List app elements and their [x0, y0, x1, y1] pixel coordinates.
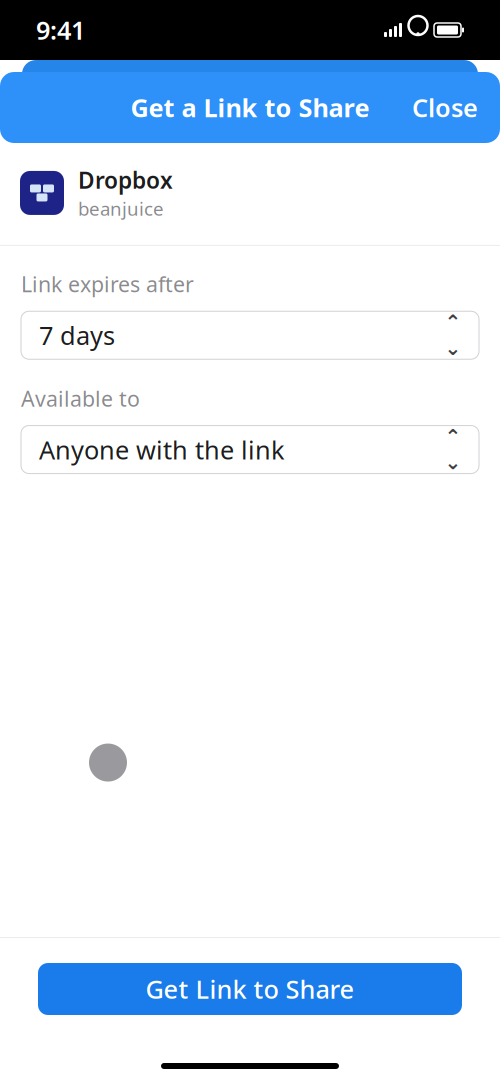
staticText: beanjuice — [78, 196, 164, 221]
staticText: Link expires after — [21, 270, 194, 298]
staticText: Get a Link to Share — [130, 91, 369, 124]
staticText: ⌃ — [444, 425, 461, 448]
staticText: ⌄ — [444, 451, 461, 474]
button[interactable]: Close — [402, 83, 488, 132]
staticText: 9:41 — [36, 13, 85, 47]
staticText: 7 days — [39, 318, 115, 352]
staticText: Get Link to Share — [145, 972, 354, 1006]
button[interactable]: Anyone with the link — [21, 426, 479, 474]
staticText: Dropbox — [78, 165, 173, 195]
staticText: Anyone with the link — [39, 433, 285, 466]
staticText: Available to — [21, 384, 140, 412]
staticText: ⌄ — [444, 337, 461, 359]
staticText: Close — [412, 91, 478, 124]
staticText: ⌃ — [444, 311, 461, 334]
button[interactable]: Get Link to Share — [38, 963, 462, 1015]
button[interactable]: 7 days — [21, 311, 479, 359]
